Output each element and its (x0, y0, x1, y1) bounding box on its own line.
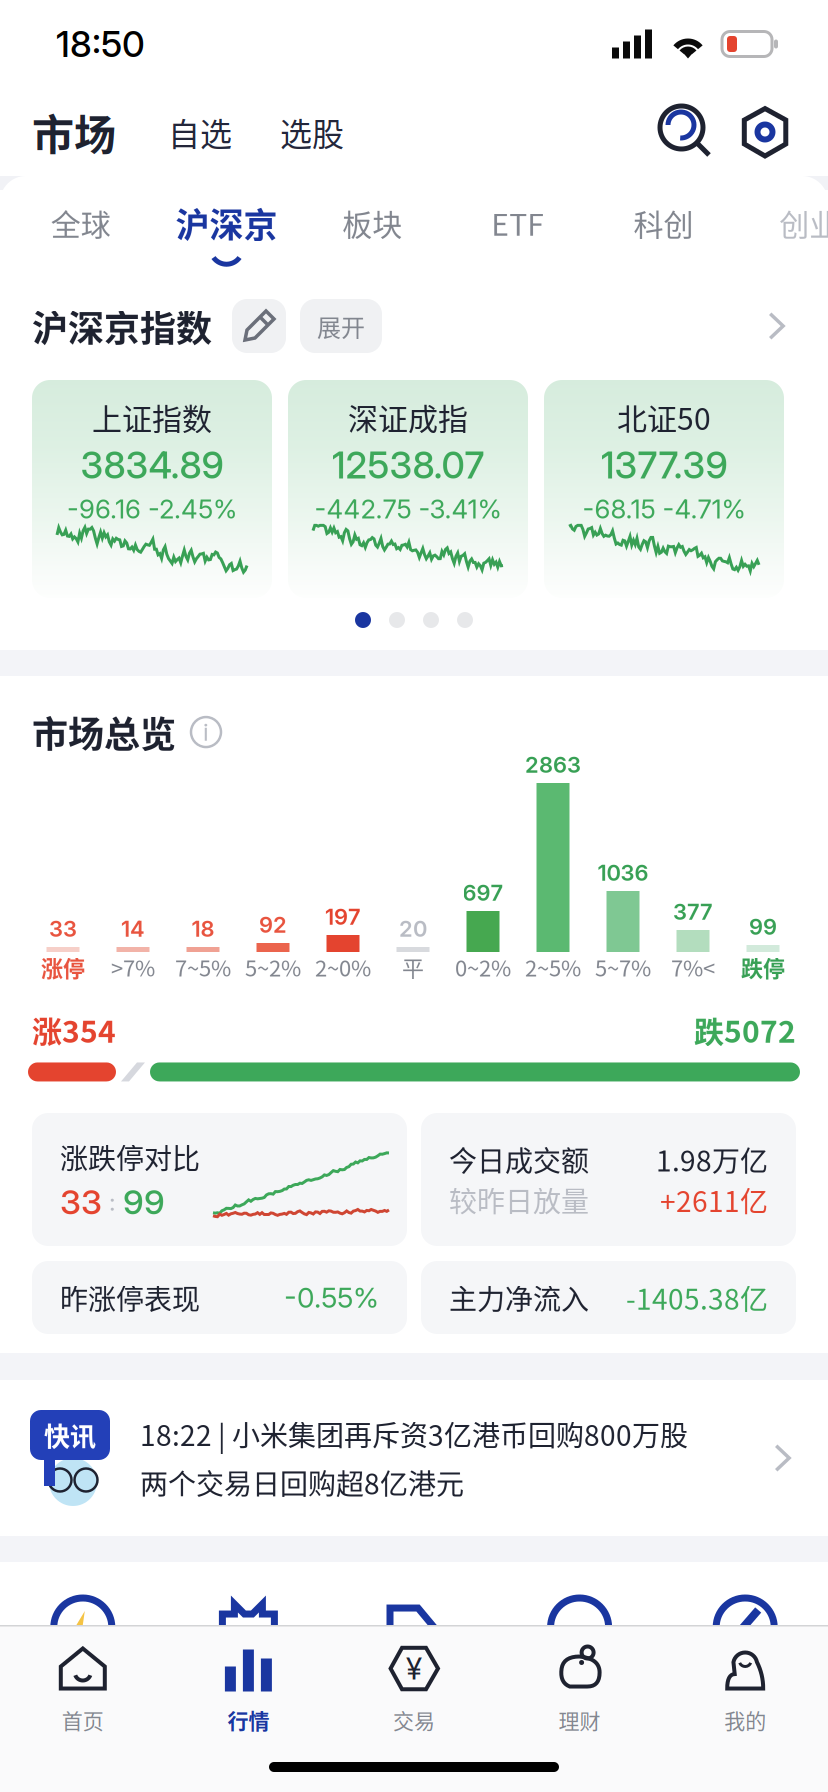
staticText: -1405.38亿 (626, 1277, 768, 1318)
staticText: 18:50 (56, 22, 145, 66)
staticText: -68.15 -4.71% (582, 493, 745, 525)
staticText: 1036 (597, 859, 648, 886)
button[interactable]: 科创 (591, 201, 736, 264)
staticText: 较昨日放量 (449, 1179, 589, 1220)
staticText: ETF (491, 201, 544, 244)
button[interactable]: 首页 (0, 1626, 166, 1747)
button[interactable]: 功能 (0, 1596, 166, 1658)
staticText: 选股 (280, 109, 344, 155)
staticText: 3834.89 (80, 443, 223, 487)
staticText: -96.16 -2.45% (67, 493, 237, 525)
staticText: 首页 (62, 1704, 104, 1735)
button[interactable]: 设置 (712, 106, 790, 158)
button[interactable]: 我的 (662, 1626, 828, 1747)
staticText: 展开 (317, 309, 365, 343)
staticText: 5~2% (245, 951, 301, 983)
staticText: i (203, 717, 209, 746)
staticText: 涨跌停对比 (60, 1136, 200, 1177)
staticText: 7~5% (175, 951, 231, 983)
staticText: 92 (259, 911, 287, 938)
staticText: 深证成指 (348, 395, 468, 439)
staticText: 2~0% (315, 951, 371, 983)
staticText: 跌停 (741, 951, 785, 983)
button[interactable]: 昨涨停表现 (32, 1261, 407, 1334)
staticText: 12538.07 (331, 443, 484, 487)
staticText: 北证50 (617, 395, 711, 439)
button[interactable]: 创业 (736, 201, 828, 264)
button[interactable]: 搜索 (660, 106, 712, 158)
staticText: 自选 (168, 109, 232, 155)
button[interactable]: 功能 (662, 1596, 828, 1658)
staticText: 99 (123, 1181, 165, 1222)
staticText: 377 (673, 898, 713, 925)
staticText: 今日成交额 (449, 1139, 589, 1179)
staticText: 0~2% (455, 951, 511, 983)
staticText: 平 (402, 951, 424, 983)
staticText: -0.55% (284, 1281, 379, 1314)
button[interactable]: 理财 (497, 1626, 662, 1747)
button[interactable]: 功能 (166, 1596, 331, 1658)
staticText: 99 (749, 913, 777, 940)
button[interactable]: 功能 (497, 1596, 662, 1658)
staticText: -442.75 -3.41% (314, 493, 501, 525)
button[interactable]: 自选 (116, 109, 232, 155)
staticText: >7% (111, 951, 155, 983)
staticText: 快讯 (44, 1416, 96, 1454)
staticText: 涨354 (32, 1008, 116, 1051)
button[interactable]: 今日成交额 (421, 1113, 796, 1246)
staticText: 1377.39 (600, 443, 727, 487)
staticText: 20 (399, 915, 427, 942)
staticText: 5~7% (595, 951, 651, 983)
staticText: 33 (49, 915, 77, 942)
button[interactable]: 板块 (299, 201, 445, 264)
staticText: 科创 (633, 201, 693, 244)
staticText: 创业 (779, 201, 828, 244)
staticText: 行情 (227, 1704, 269, 1735)
button[interactable]: ¥ (331, 1626, 497, 1747)
button[interactable]: 快讯 (0, 1380, 828, 1536)
staticText: 33 (60, 1181, 102, 1222)
staticText: 交易 (393, 1704, 435, 1735)
staticText: 两个交易日回购超8亿港元 (140, 1462, 464, 1502)
staticText: 7%< (671, 951, 715, 983)
staticText: 涨停 (41, 951, 85, 983)
staticText: 197 (325, 903, 361, 930)
button[interactable]: 选股 (232, 109, 344, 155)
staticText: 我的 (724, 1704, 766, 1735)
staticText: 2863 (525, 751, 581, 778)
button[interactable]: 展开 (286, 299, 382, 353)
staticText: 板块 (342, 201, 402, 244)
staticText: ¥ (406, 1650, 422, 1687)
staticText: 18 (191, 915, 214, 942)
staticText: 全球 (51, 201, 111, 244)
staticText: 主力净流入 (449, 1277, 589, 1318)
staticText: 理财 (559, 1704, 601, 1735)
button[interactable]: 上证指数 (32, 380, 272, 598)
button[interactable]: 市场 (32, 102, 116, 162)
staticText: 沪深京指数 (32, 300, 212, 352)
staticText: : (102, 1187, 123, 1216)
button[interactable]: 行情 (166, 1626, 331, 1747)
staticText: 上证指数 (92, 395, 212, 439)
staticText: 18:22 | 小米集团再斥资3亿港币回购800万股 (140, 1413, 688, 1454)
staticText: 昨涨停表现 (60, 1277, 200, 1318)
staticText: 沪深京 (175, 198, 277, 247)
staticText: 697 (462, 879, 503, 906)
button[interactable]: 涨跌停对比 (32, 1113, 407, 1246)
staticText: 市场 (32, 102, 116, 162)
staticText: 2~5% (525, 951, 581, 983)
staticText: 14 (121, 915, 145, 942)
button[interactable]: 全球 (8, 201, 154, 264)
button[interactable]: 主力净流入 (421, 1261, 796, 1334)
button[interactable]: 更多 (760, 309, 794, 343)
button[interactable]: 沪深京 (154, 198, 299, 267)
button[interactable]: ETF (445, 201, 591, 264)
button[interactable]: 功能 (331, 1596, 497, 1658)
button[interactable]: 深证成指 (288, 380, 528, 598)
button[interactable]: 说明 (176, 716, 222, 748)
staticText: 市场总览 (32, 706, 176, 758)
button[interactable]: 北证50 (544, 380, 784, 598)
button[interactable]: 编辑 (212, 299, 286, 353)
staticText: 跌5072 (694, 1008, 796, 1051)
staticText: 1.98万亿 (656, 1139, 768, 1179)
